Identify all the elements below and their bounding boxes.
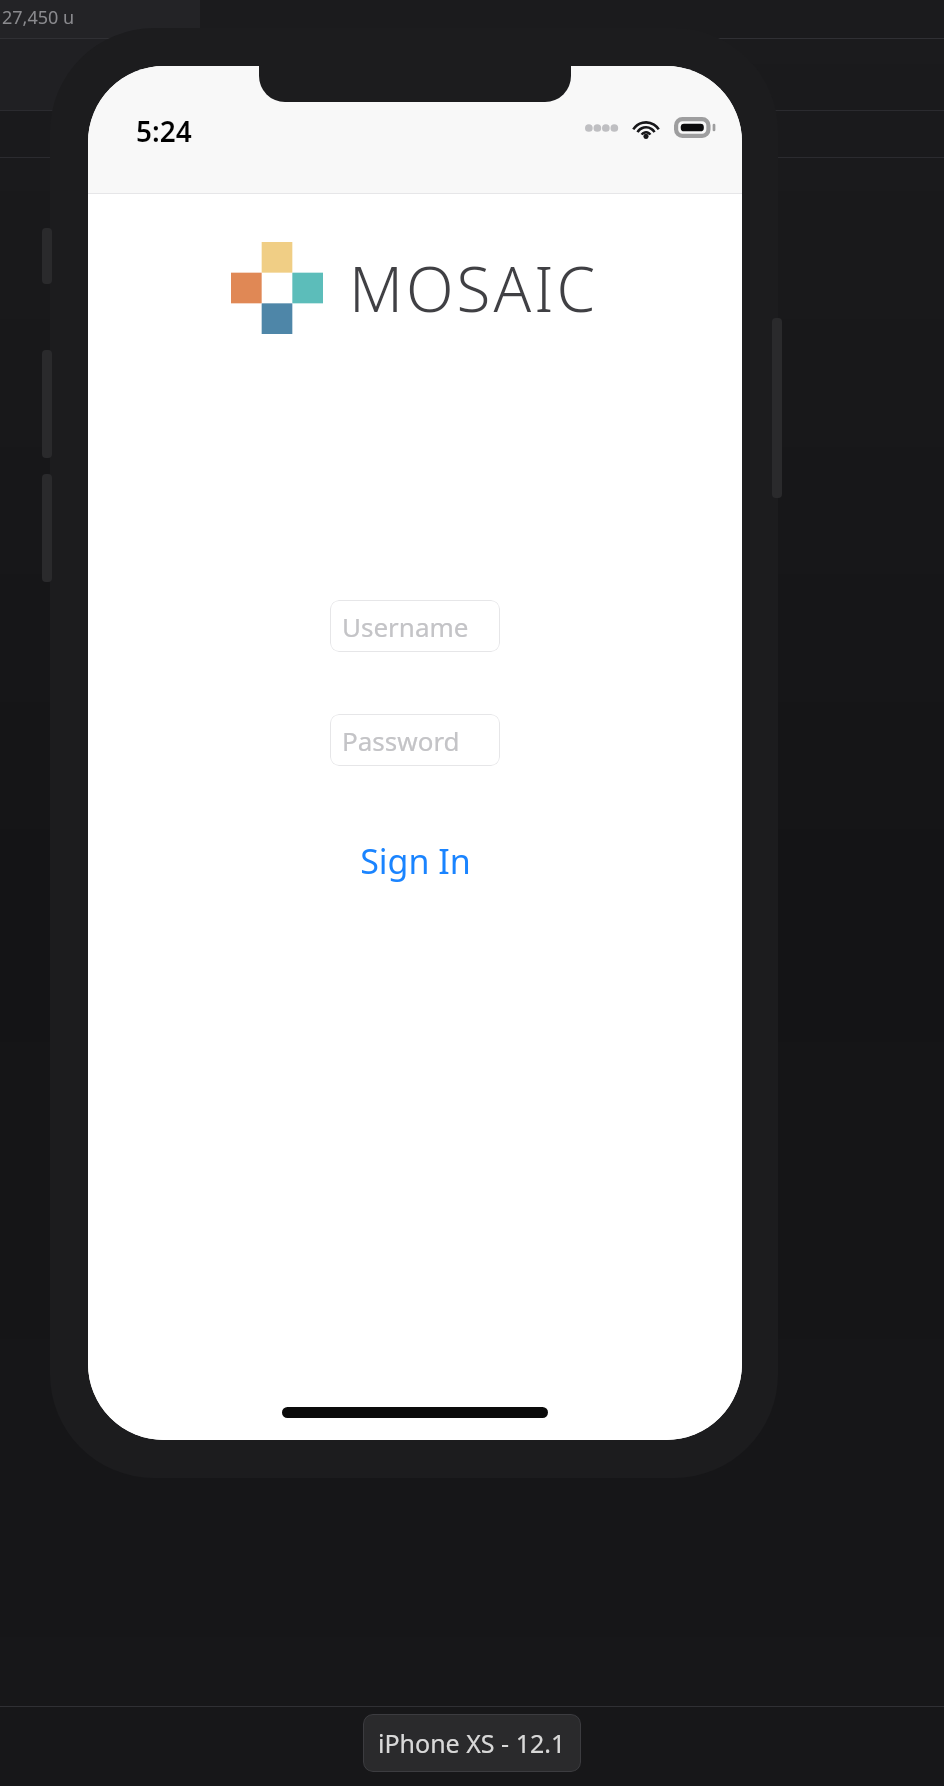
button[interactable]: Sign In bbox=[338, 830, 493, 892]
button[interactable]: Device selector iPhone XS bbox=[363, 1714, 581, 1772]
staticText: Sign In bbox=[360, 838, 471, 884]
staticText: 27,450 u bbox=[2, 5, 75, 30]
button[interactable]: Password bbox=[330, 714, 500, 766]
staticText: MOSAIC bbox=[349, 246, 599, 330]
staticText: iPhone XS - 12.1 bbox=[378, 1726, 566, 1760]
button[interactable]: Username bbox=[330, 600, 500, 652]
staticText: Username bbox=[342, 609, 469, 644]
staticText: Password bbox=[342, 723, 460, 758]
staticText: 5:24 bbox=[136, 112, 192, 150]
